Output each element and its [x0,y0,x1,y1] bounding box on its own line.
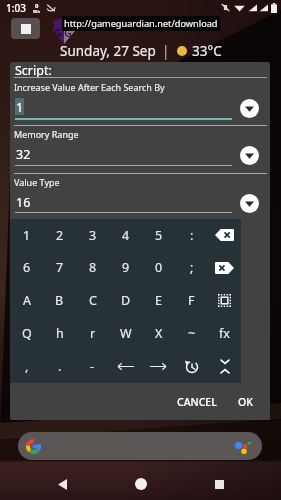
staticText: E [155,292,162,309]
staticText: 32 [16,146,31,163]
button[interactable]: : [175,219,208,251]
staticText: Q [22,325,32,342]
staticText: 0 [35,2,39,10]
staticText: h [56,325,64,342]
staticText: 7 [56,259,64,276]
staticText: X [155,325,163,342]
button[interactable]: Recents [203,468,235,500]
button[interactable]: . [43,350,76,383]
staticText: 6 [23,259,31,276]
button[interactable]: h [43,317,76,350]
staticText: 9 [122,259,130,276]
staticText: KB/s [33,10,41,14]
other: Google Assistant [233,439,252,454]
button[interactable]: Move right [142,350,175,383]
button[interactable]: 3 [76,219,109,251]
button[interactable]: D [109,284,142,317]
button[interactable]: 0 [142,251,175,284]
other: Backspace [215,229,234,241]
button[interactable]: E [142,284,175,317]
staticText: - [90,358,95,375]
button[interactable]: Q [10,317,43,350]
staticText: 5 [155,227,163,244]
button[interactable]: Delete [208,251,241,284]
staticText: F [188,292,195,309]
button[interactable]: 9 [109,251,142,284]
button[interactable]: Collapse keyboard [208,350,241,383]
button[interactable]: 5 [142,219,175,251]
staticText: 8 [89,259,97,276]
button[interactable]: Select all [208,284,241,317]
staticText: 3 [89,227,97,244]
staticText: D [121,292,131,309]
staticText: CANCEL [177,395,217,409]
staticText: ; [190,259,194,276]
staticText: Sunday, 27 Sep [60,42,156,60]
other: Move left [117,362,134,371]
staticText: Memory Range [14,128,79,140]
button[interactable]: 1 [10,219,43,251]
other: History [185,360,199,374]
staticText: Script: [15,62,52,79]
button[interactable]: Dropdown [240,146,259,165]
button[interactable]: Search [18,432,262,460]
staticText: G [54,25,62,40]
button[interactable]: 4 [109,219,142,251]
button[interactable]: A [10,284,43,317]
staticText: 1 [23,227,31,244]
staticText: http://gameguardian.net/download [64,17,218,30]
button[interactable]: OK [230,390,261,414]
button[interactable]: 2 [43,219,76,251]
other: Move right [150,362,167,371]
button[interactable]: 7 [43,251,76,284]
button[interactable]: ; [175,251,208,284]
button[interactable]: r [76,317,109,350]
other: Collapse keyboard [220,358,230,375]
button[interactable]: Back [46,468,78,500]
staticText: 33°C [192,42,222,60]
button[interactable]: F [175,284,208,317]
staticText: 2 [56,227,64,244]
staticText: G [64,25,72,40]
button[interactable]: History [175,350,208,383]
staticText: 1:03 [6,1,26,15]
staticText: 1 [16,99,24,116]
staticText: : [190,227,194,244]
button[interactable]: Dropdown [240,194,259,213]
staticText: ~ [188,325,196,342]
button[interactable]: W [109,317,142,350]
button[interactable]: B [43,284,76,317]
button[interactable]: Move left [109,350,142,383]
staticText: B [55,292,64,309]
staticText: 0 [155,259,163,276]
button[interactable]: C [76,284,109,317]
staticText: . [58,358,62,375]
staticText: 16 [16,194,31,211]
other: Select all [218,294,231,307]
staticText: W [120,325,132,342]
button[interactable]: Dropdown [240,99,259,118]
staticText: r [90,325,96,342]
staticText: C [89,292,97,309]
button[interactable]: Stop [11,18,40,39]
staticText: , [25,358,29,375]
other: Delete [215,262,234,274]
button[interactable]: CANCEL [169,390,225,414]
staticText: Increase Value After Each Search By [14,81,165,93]
button[interactable]: ~ [175,317,208,350]
button[interactable]: 6 [10,251,43,284]
staticText: A [23,292,31,309]
staticText: fx [219,325,230,342]
button[interactable]: 8 [76,251,109,284]
staticText: 4 [122,227,130,244]
staticText: Value Type [14,176,60,188]
button[interactable]: Backspace [208,219,241,251]
button[interactable]: - [76,350,109,383]
button[interactable]: X [142,317,175,350]
staticText: | [162,42,170,60]
button[interactable]: , [10,350,43,383]
button[interactable]: Home [125,468,157,500]
staticText: OK [238,395,253,409]
button[interactable]: fx [208,317,241,350]
